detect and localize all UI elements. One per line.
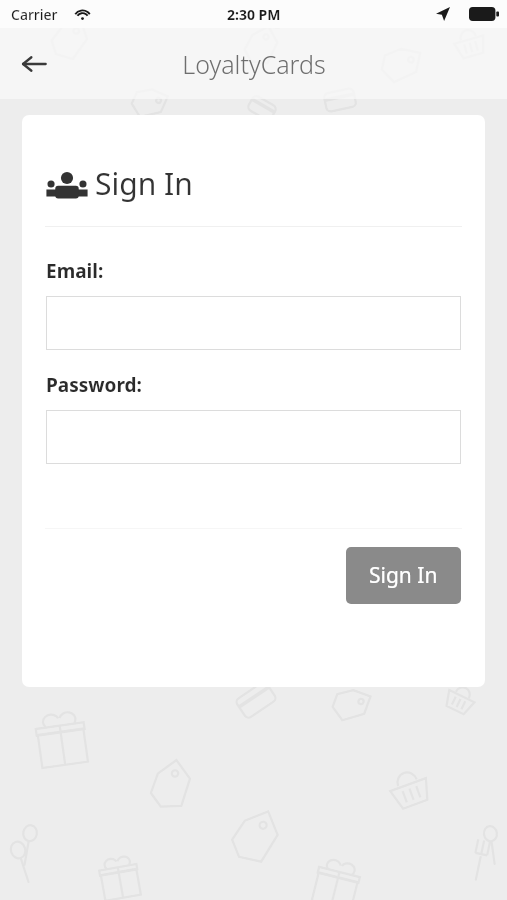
button[interactable]: Sign In <box>346 547 461 604</box>
button[interactable]: Password field <box>46 410 461 464</box>
staticText: LoyaltyCards <box>182 47 326 81</box>
staticText: Password: <box>46 372 142 398</box>
staticText: 2:30 PM <box>227 5 281 24</box>
staticText: Carrier <box>11 5 58 24</box>
staticText: Sign In <box>369 561 438 590</box>
staticText: Sign In <box>95 163 193 204</box>
button[interactable]: Back <box>12 42 56 86</box>
staticText: Email: <box>46 258 104 284</box>
button[interactable]: Email field <box>46 296 461 350</box>
